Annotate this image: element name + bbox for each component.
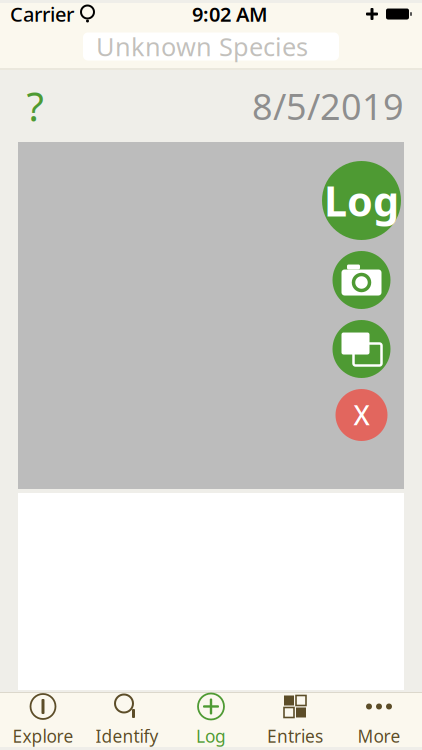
staticText: Unknown Species [96,30,308,63]
staticText: 9:02 AM [192,1,268,27]
button[interactable]: Entries [253,693,337,747]
button[interactable]: Log [169,693,253,747]
button[interactable]: Unknown Species [83,32,339,60]
button[interactable]: Identify [85,693,169,747]
staticText: Entries [267,724,323,747]
button[interactable]: Explore [1,693,85,747]
staticText: Identify [95,724,158,747]
button[interactable]: Take photo [332,251,390,309]
button[interactable]: Log [322,161,401,240]
button[interactable]: More [337,693,421,747]
staticText: 8/5/2019 [252,82,404,130]
button[interactable]: Choose from library [332,320,390,378]
staticText: Log [324,173,399,228]
staticText: Log [196,724,226,747]
staticText: Carrier [10,1,74,27]
staticText: More [357,724,400,747]
button[interactable]: Help [18,86,52,126]
staticText: ? [26,79,43,132]
staticText: Explore [12,724,73,747]
staticText: X [353,397,369,433]
button[interactable]: Close [335,389,387,441]
